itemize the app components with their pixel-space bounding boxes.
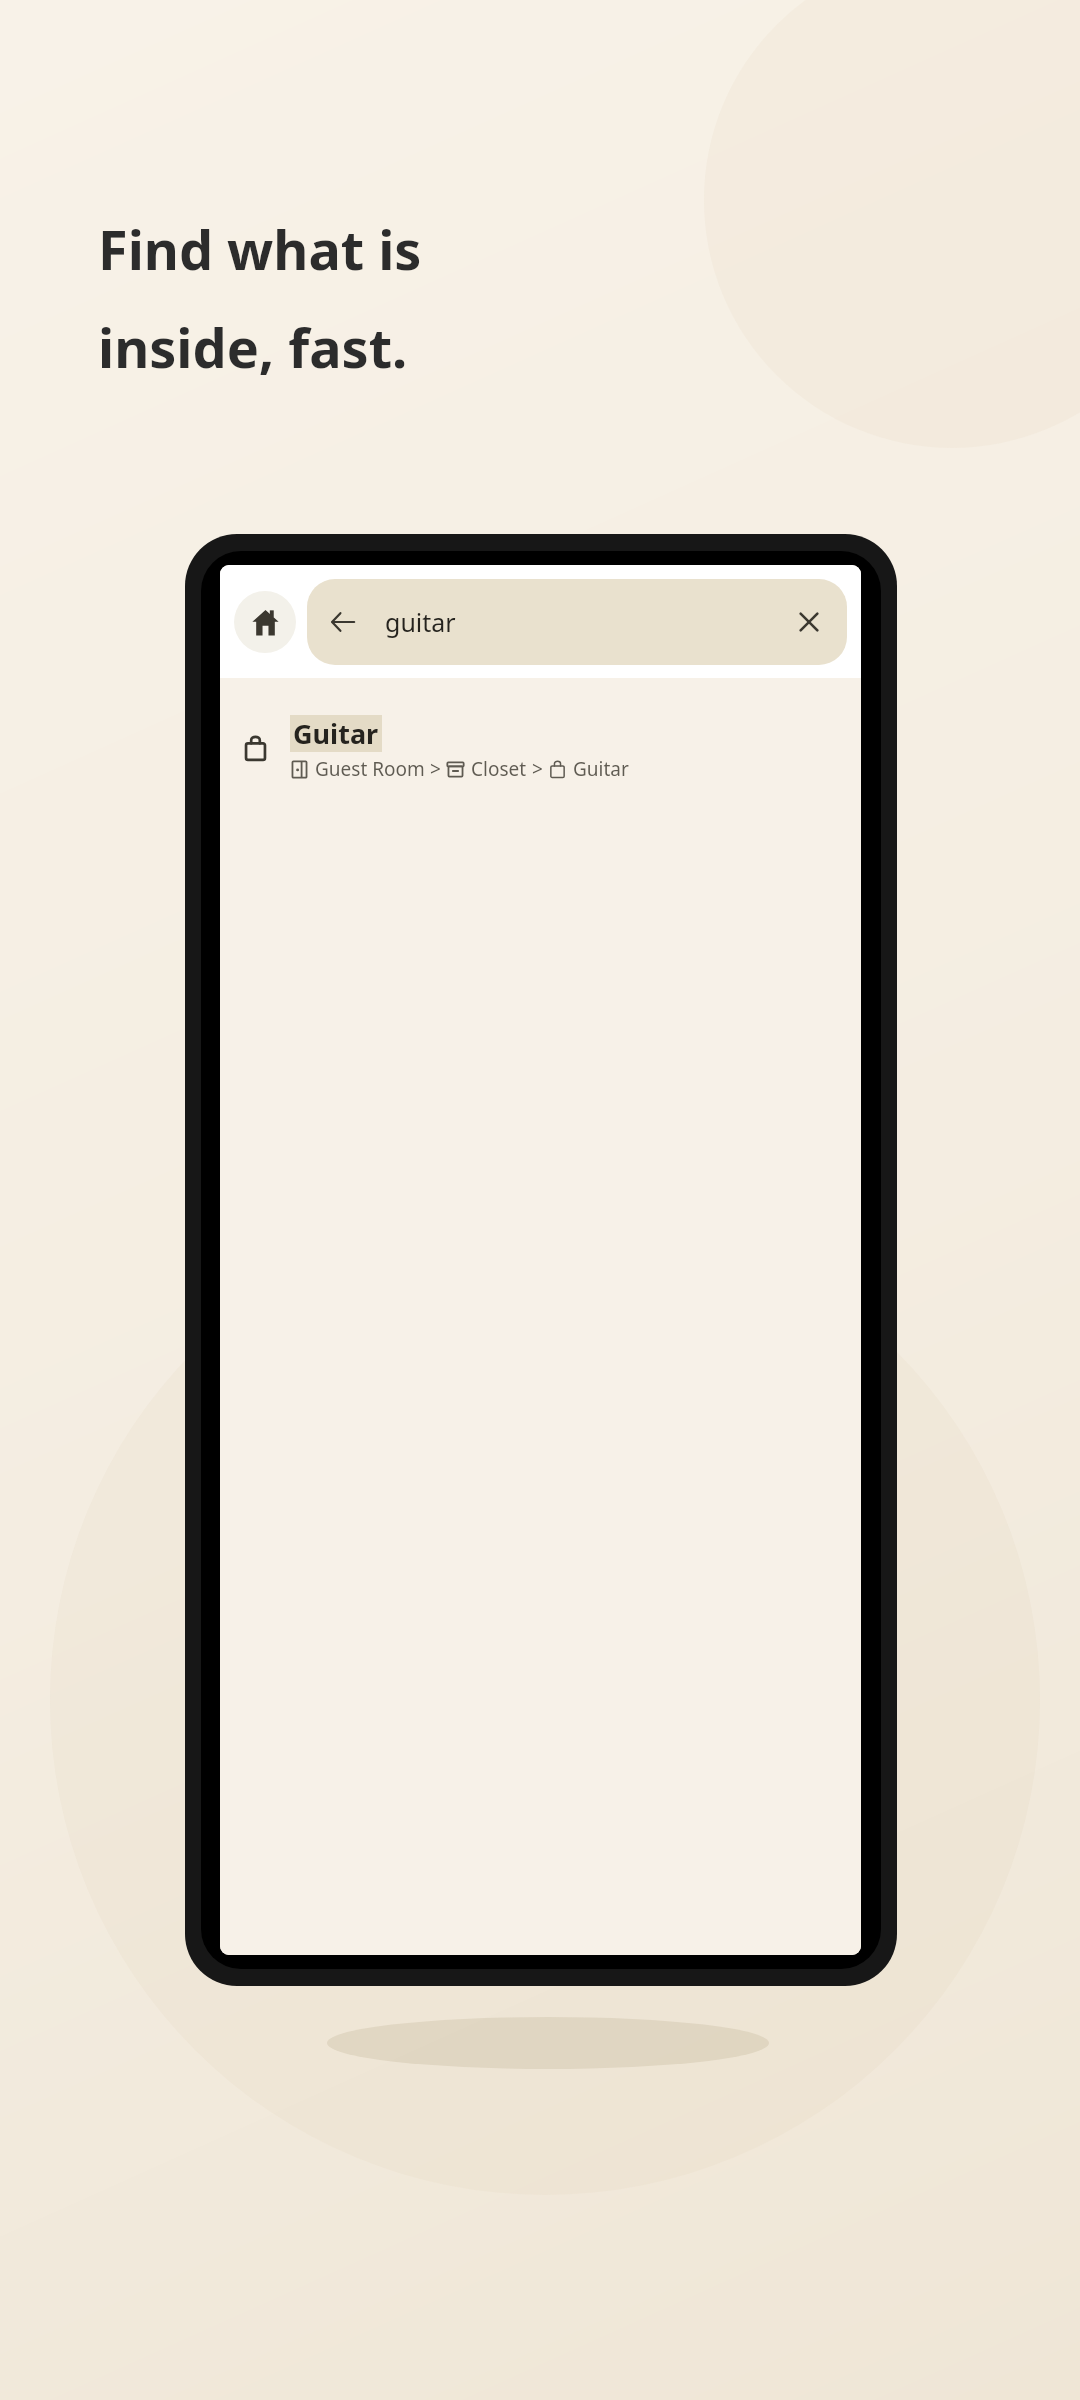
staticText: Find what is (98, 212, 422, 286)
staticText: Guitar (293, 715, 379, 752)
staticText: guitar (385, 605, 783, 639)
staticText: > (532, 756, 543, 782)
staticText: Guest Room (315, 756, 425, 782)
button[interactable]: Clear search (783, 596, 835, 648)
button[interactable]: Home (234, 591, 296, 653)
staticText: inside, fast. (98, 310, 408, 384)
staticText: > (430, 756, 441, 782)
staticText: Closet (471, 756, 527, 782)
button[interactable]: Back (319, 598, 367, 646)
button[interactable]: Guitar (220, 702, 861, 794)
staticText: Guitar (573, 756, 629, 782)
button[interactable]: Back (307, 579, 847, 665)
